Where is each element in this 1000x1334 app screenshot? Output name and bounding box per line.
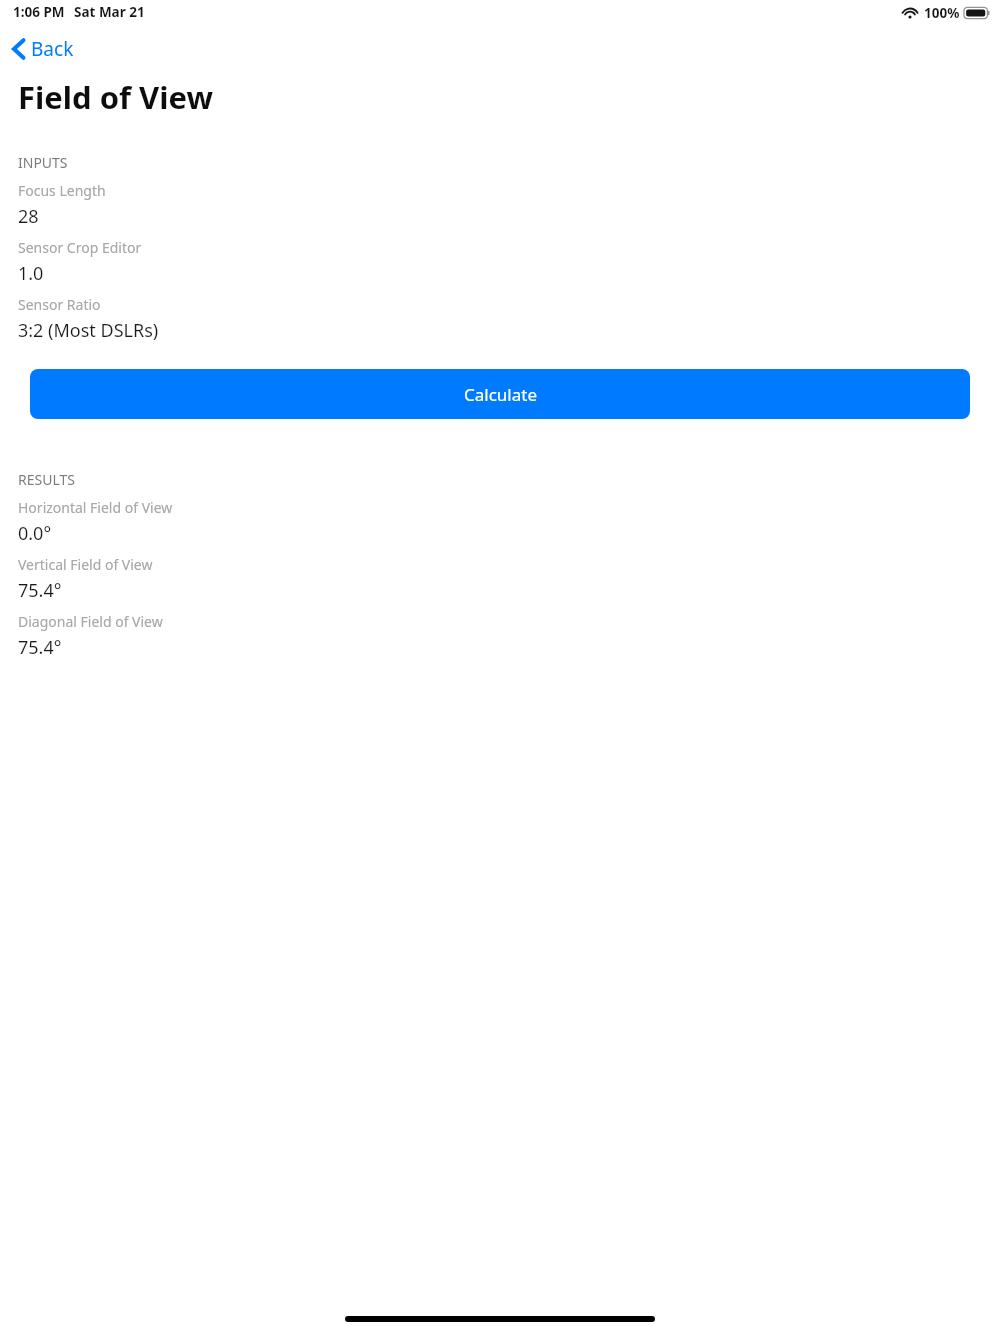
- staticText: Focus Length: [18, 181, 106, 200]
- staticText: 75.4°: [18, 635, 62, 660]
- staticText: INPUTS: [18, 153, 68, 172]
- button[interactable]: Sensor Ratio: [0, 293, 1000, 350]
- staticText: 1:06 PM: [13, 3, 65, 21]
- staticText: 28: [18, 204, 39, 229]
- other: Home indicator: [345, 1316, 655, 1322]
- staticText: Field of View: [18, 76, 213, 118]
- staticText: RESULTS: [18, 470, 75, 489]
- staticText: 0.0°: [18, 521, 52, 546]
- staticText: Sensor Ratio: [18, 295, 101, 314]
- staticText: 3:2 (Most DSLRs): [18, 318, 159, 343]
- staticText: Horizontal Field of View: [18, 498, 173, 517]
- staticText: Diagonal Field of View: [18, 612, 163, 631]
- button[interactable]: Calculate: [30, 369, 970, 419]
- staticText: Sensor Crop Editor: [18, 238, 142, 257]
- staticText: Back: [31, 36, 74, 62]
- staticText: Sat Mar 21: [74, 3, 145, 21]
- staticText: Vertical Field of View: [18, 555, 153, 574]
- button[interactable]: Diagonal Field of View: [0, 610, 1000, 667]
- staticText: 75.4°: [18, 578, 62, 603]
- staticText: 1.0: [18, 261, 44, 286]
- button[interactable]: Horizontal Field of View: [0, 496, 1000, 553]
- button[interactable]: Sensor Crop Editor: [0, 236, 1000, 293]
- staticText: Calculate: [464, 383, 537, 406]
- button[interactable]: Back: [8, 33, 78, 65]
- button[interactable]: Vertical Field of View: [0, 553, 1000, 610]
- staticText: 100%: [924, 4, 960, 22]
- button[interactable]: Focus Length: [0, 179, 1000, 236]
